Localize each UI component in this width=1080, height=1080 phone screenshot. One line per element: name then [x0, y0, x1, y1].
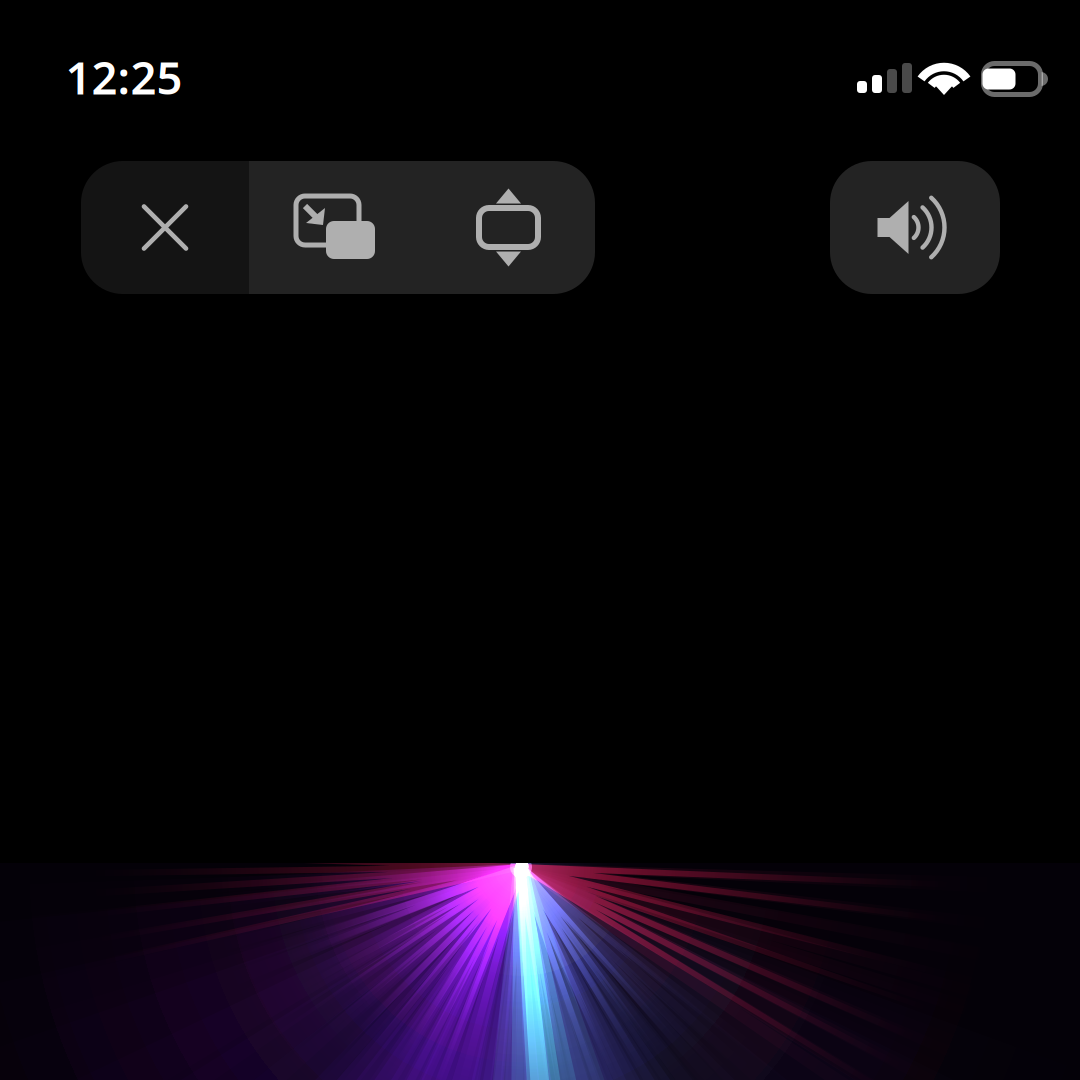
button[interactable]: Close	[81, 161, 249, 294]
button[interactable]: Picture in Picture	[249, 161, 422, 294]
staticText: 12:25	[65, 47, 182, 107]
button[interactable]: Volume	[830, 161, 1000, 294]
button[interactable]: Zoom to Fill	[422, 161, 595, 294]
